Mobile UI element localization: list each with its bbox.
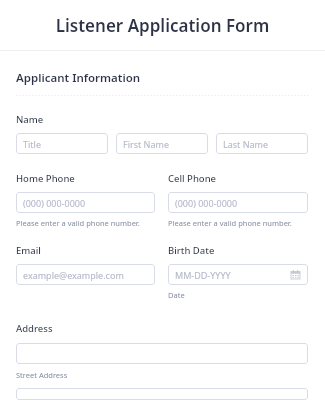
button[interactable]: example@example.com — [16, 264, 155, 285]
staticText: Last Name — [223, 138, 269, 150]
staticText: Email — [16, 244, 41, 257]
staticText: Home Phone — [16, 172, 75, 185]
staticText: Please enter a valid phone number. — [168, 218, 292, 228]
staticText: Date — [168, 290, 185, 300]
staticText: Name — [16, 113, 44, 126]
button[interactable] — [16, 343, 308, 364]
staticText: Title — [23, 138, 41, 150]
button[interactable]: Last Name — [216, 133, 308, 154]
staticText: Address — [16, 322, 53, 335]
staticText: Street Address — [16, 370, 68, 380]
staticText: First Name — [123, 138, 169, 150]
button[interactable]: Choose date — [290, 269, 301, 280]
button[interactable]: (000) 000-0000 — [16, 192, 155, 213]
staticText: (000) 000-0000 — [175, 197, 238, 209]
staticText: Listener Application Form — [0, 14, 325, 37]
staticText: Cell Phone — [168, 172, 217, 185]
staticText: MM-DD-YYYY — [175, 269, 231, 281]
button[interactable]: MM-DD-YYYY — [168, 264, 308, 285]
staticText: (000) 000-0000 — [23, 197, 86, 209]
staticText: Birth Date — [168, 244, 215, 257]
staticText: Please enter a valid phone number. — [16, 218, 140, 228]
staticText: Applicant Information — [16, 70, 141, 86]
button[interactable] — [16, 388, 308, 400]
staticText: example@example.com — [23, 269, 124, 281]
button[interactable]: (000) 000-0000 — [168, 192, 308, 213]
button[interactable]: Title — [16, 133, 108, 154]
button[interactable]: First Name — [116, 133, 208, 154]
